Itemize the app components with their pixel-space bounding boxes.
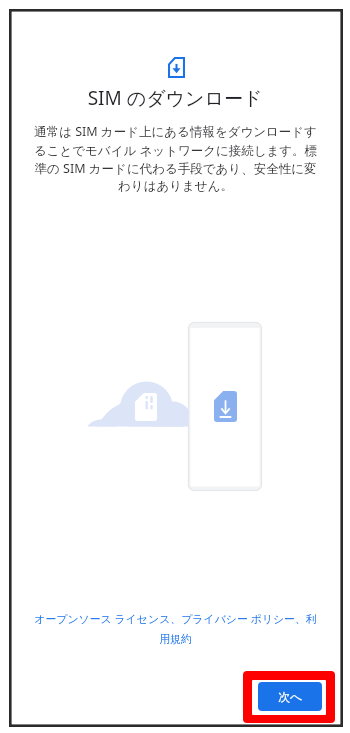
button[interactable]: オープンソース ライセンス、プライバシー ポリシー、利用規約 [32,611,319,646]
staticText: 次へ [278,689,303,704]
other: SIM download [168,57,185,78]
button[interactable]: 次へ [258,682,322,711]
staticText: 通常は SIM カード上にある情報をダウンロードすることでモバイル ネットワーク… [33,123,318,194]
staticText: SIM のダウンロード [0,85,350,111]
